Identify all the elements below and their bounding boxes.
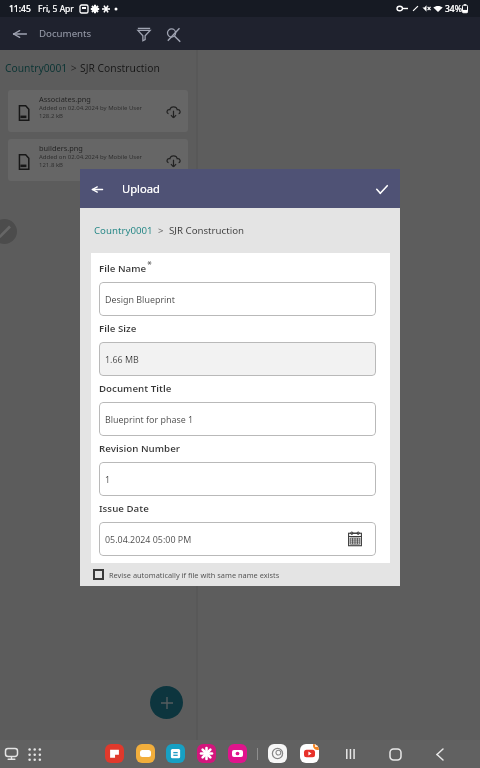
- staticText: 1.66 MB: [105, 353, 139, 365]
- staticText: File Size: [99, 322, 137, 335]
- staticText: >: [153, 224, 169, 237]
- button[interactable]: Back: [85, 177, 109, 201]
- staticText: Revise automatically if file with same n…: [109, 570, 280, 580]
- staticText: SJR Construction: [169, 224, 245, 237]
- staticText: 1: [105, 473, 111, 485]
- staticText: 128.2 kB: [39, 112, 64, 120]
- button[interactable]: Blueprint for phase 1: [99, 402, 376, 436]
- staticText: Added on 02.04.2024 by Mobile User: [39, 153, 143, 161]
- button[interactable]: Camera: [228, 744, 247, 763]
- button[interactable]: Edit: [0, 219, 17, 244]
- button[interactable]: 1.66 MB: [99, 342, 376, 376]
- button[interactable]: DeX mode: [1, 744, 21, 764]
- staticText: Added on 02.04.2024 by Mobile User: [39, 104, 143, 112]
- button[interactable]: Back: [427, 741, 453, 767]
- staticText: Document Title: [99, 382, 172, 395]
- staticText: 05.04.2024 05:00 PM: [105, 533, 192, 545]
- button[interactable]: Gallery: [197, 744, 216, 763]
- button[interactable]: Country0001: [94, 224, 153, 237]
- button[interactable]: Add: [150, 686, 183, 719]
- staticText: Country0001: [5, 61, 68, 75]
- button[interactable]: Docs: [105, 744, 124, 763]
- staticText: Blueprint for phase 1: [105, 413, 194, 425]
- button[interactable]: Internet: [268, 744, 287, 763]
- staticText: SJR Construction: [80, 61, 160, 75]
- button[interactable]: 1: [99, 462, 376, 496]
- button[interactable]: 05.04.2024 05:00 PM: [99, 522, 376, 556]
- button[interactable]: Design Blueprint: [99, 282, 376, 316]
- staticText: Revision Number: [99, 442, 181, 455]
- button[interactable]: Associates.png: [8, 90, 188, 132]
- button[interactable]: My Files: [136, 744, 155, 763]
- staticText: Upload: [122, 181, 160, 196]
- button[interactable]: YouTube: [300, 744, 319, 763]
- button[interactable]: Calendar: [166, 744, 185, 763]
- button[interactable]: builders.png: [8, 139, 188, 181]
- button[interactable]: Pick date: [347, 531, 363, 547]
- staticText: builders.png: [39, 143, 83, 153]
- button[interactable]: Clear search: [159, 20, 187, 48]
- button[interactable]: Confirm upload: [369, 176, 395, 202]
- staticText: Documents: [39, 27, 92, 40]
- staticText: Fri, 5 Apr: [38, 3, 74, 15]
- staticText: File Name: [99, 262, 147, 275]
- staticText: 82: [315, 744, 319, 749]
- button[interactable]: Revise automatically if file with same n…: [93, 563, 400, 586]
- staticText: 121.8 kB: [39, 161, 64, 169]
- button[interactable]: Recents: [337, 741, 363, 767]
- staticText: >: [68, 61, 80, 75]
- staticText: Design Blueprint: [105, 293, 176, 305]
- button[interactable]: All apps: [24, 744, 44, 764]
- button[interactable]: Filter: [130, 20, 158, 48]
- staticText: 11:45: [9, 3, 31, 15]
- staticText: 34%: [445, 3, 462, 15]
- staticText: Associates.png: [39, 94, 91, 104]
- button[interactable]: Back: [7, 21, 33, 47]
- button[interactable]: Home: [382, 741, 408, 767]
- staticText: Issue Date: [99, 502, 149, 515]
